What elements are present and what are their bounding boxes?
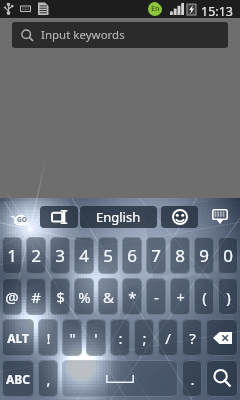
staticText: "	[69, 328, 76, 348]
staticText: 3	[55, 244, 65, 267]
staticText: 15:13	[201, 3, 233, 20]
button[interactable]: ?	[182, 319, 202, 356]
button[interactable]: 4	[74, 237, 94, 274]
staticText: (	[202, 287, 207, 307]
button[interactable]: ;	[134, 319, 154, 356]
button[interactable]: .	[182, 360, 202, 397]
staticText: %	[78, 287, 91, 307]
staticText: 1	[7, 244, 17, 267]
staticText: ,	[46, 369, 51, 389]
staticText: ;	[142, 328, 147, 348]
button[interactable]: ALT	[2, 319, 34, 356]
button[interactable]: &	[98, 278, 118, 315]
staticText: Input keywords	[41, 27, 125, 43]
button[interactable]: 8	[170, 237, 190, 274]
staticText: En	[151, 4, 160, 14]
button[interactable]: !	[38, 319, 58, 356]
button[interactable]: 5	[98, 237, 118, 274]
staticText: 6	[127, 244, 137, 267]
staticText: /	[165, 328, 171, 348]
button[interactable]: +	[170, 278, 190, 315]
staticText: 9	[199, 244, 209, 267]
button[interactable]: ABC	[2, 360, 34, 397]
button[interactable]: /	[158, 319, 178, 356]
button[interactable]: English	[80, 206, 157, 228]
staticText: )	[226, 287, 231, 307]
staticText: '	[94, 328, 98, 348]
staticText: *	[128, 287, 137, 307]
staticText: 5	[103, 244, 113, 267]
staticText: English	[96, 208, 141, 226]
button[interactable]: -	[146, 278, 166, 315]
staticText: ALT	[7, 330, 29, 346]
button[interactable]: 6	[122, 237, 142, 274]
button[interactable]: Keyboard theme	[40, 206, 78, 228]
button[interactable]: :	[110, 319, 130, 356]
staticText: 2	[31, 244, 41, 267]
staticText: &	[103, 287, 114, 307]
staticText: !	[46, 328, 51, 348]
staticText: 4	[79, 244, 89, 267]
button[interactable]: $	[50, 278, 70, 315]
staticText: +	[176, 287, 185, 307]
button[interactable]: (	[194, 278, 214, 315]
button[interactable]: Space	[62, 360, 178, 397]
staticText: 8	[175, 244, 185, 267]
button[interactable]: 2	[26, 237, 46, 274]
button[interactable]: )	[218, 278, 238, 315]
button[interactable]: 7	[146, 237, 166, 274]
button[interactable]: 0	[218, 237, 238, 274]
button[interactable]: Search	[206, 360, 238, 397]
button[interactable]: Emoji	[161, 206, 198, 228]
button[interactable]: 3	[50, 237, 70, 274]
staticText: @	[5, 287, 19, 307]
button[interactable]: Input keywords	[12, 22, 228, 48]
button[interactable]: ,	[38, 360, 58, 397]
staticText: ABC	[6, 371, 30, 387]
staticText: .	[190, 369, 195, 389]
button[interactable]: @	[2, 278, 22, 315]
button[interactable]: 1	[2, 237, 22, 274]
button[interactable]: Delete	[206, 319, 238, 356]
button[interactable]: '	[86, 319, 106, 356]
staticText: 7	[151, 244, 161, 267]
button[interactable]: GO Keyboard menu	[11, 212, 31, 226]
staticText: ?	[189, 328, 196, 348]
staticText: #	[31, 287, 41, 307]
staticText: :	[118, 328, 123, 348]
button[interactable]: Hide keyboard	[212, 209, 228, 224]
button[interactable]: #	[26, 278, 46, 315]
button[interactable]: "	[62, 319, 82, 356]
button[interactable]: 9	[194, 237, 214, 274]
staticText: -	[154, 287, 159, 307]
staticText: GO	[17, 215, 27, 224]
button[interactable]: %	[74, 278, 94, 315]
button[interactable]: *	[122, 278, 142, 315]
staticText: 0	[223, 244, 233, 267]
staticText: $	[56, 287, 65, 307]
